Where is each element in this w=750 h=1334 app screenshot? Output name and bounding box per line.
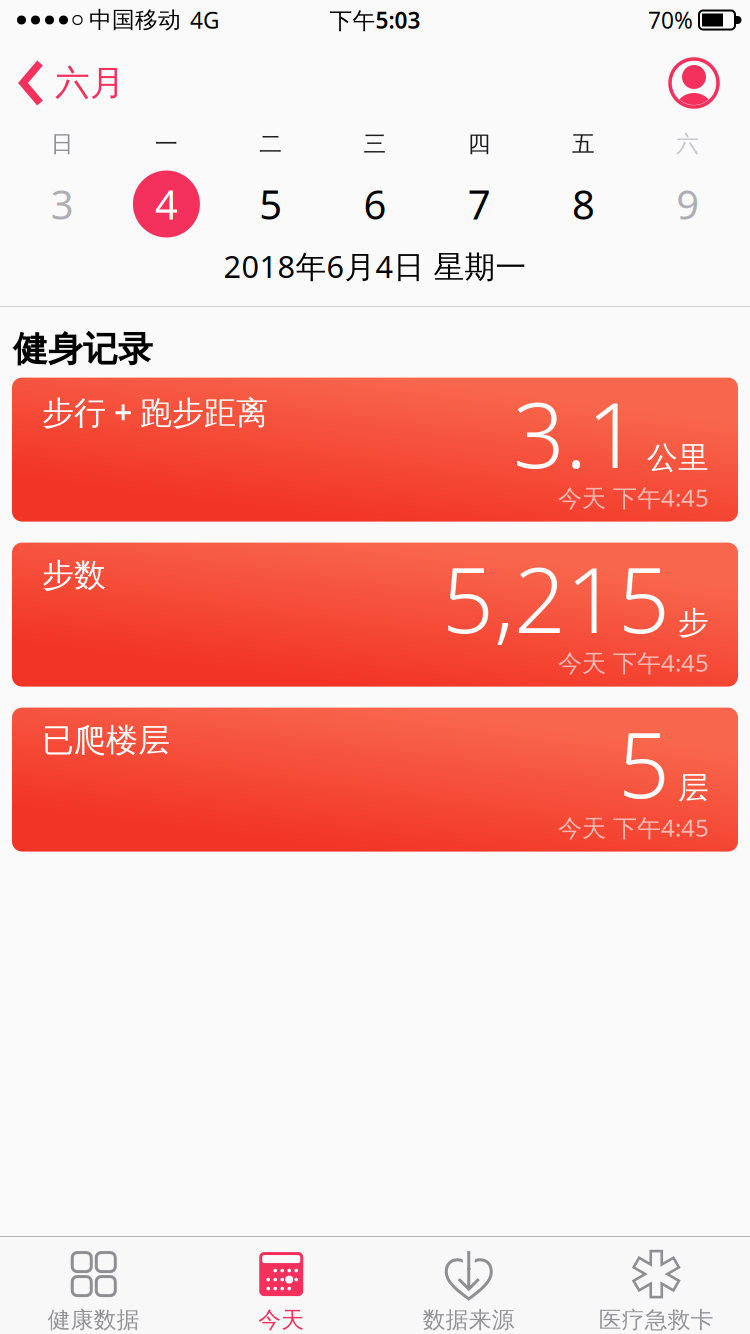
- staticText: 今天 下午4:45: [558, 482, 709, 513]
- button[interactable]: 数据来源: [375, 1237, 562, 1334]
- button[interactable]: 健康数据: [0, 1237, 187, 1334]
- staticText: 健康数据: [48, 1306, 140, 1334]
- staticText: 6: [363, 177, 386, 230]
- button[interactable]: 六月: [0, 59, 125, 107]
- staticText: 今天 下午4:45: [558, 812, 709, 843]
- staticText: 二: [259, 130, 282, 158]
- button[interactable]: [669, 58, 750, 108]
- staticText: 70%: [648, 5, 693, 35]
- staticText: 5: [259, 177, 282, 230]
- staticText: 层: [678, 769, 709, 807]
- staticText: 5,215: [442, 538, 670, 658]
- button[interactable]: 3: [10, 162, 114, 246]
- staticText: 医疗急救卡: [599, 1306, 714, 1334]
- button[interactable]: 7: [427, 162, 531, 246]
- staticText: 五: [572, 130, 595, 158]
- staticText: 六月: [55, 62, 125, 104]
- button[interactable]: 今天: [187, 1237, 375, 1334]
- staticText: 公里: [647, 439, 709, 477]
- button[interactable]: 步数: [12, 543, 738, 687]
- staticText: 2018年6月4日 星期一: [223, 246, 526, 286]
- button[interactable]: 步行 + 跑步距离: [12, 378, 738, 522]
- staticText: 四: [468, 130, 491, 158]
- staticText: 一: [155, 130, 178, 158]
- staticText: 3.1: [513, 373, 639, 493]
- staticText: 日: [51, 130, 74, 158]
- button[interactable]: 6: [323, 162, 427, 246]
- staticText: 步行 + 跑步距离: [42, 391, 268, 433]
- staticText: 8: [572, 177, 595, 230]
- staticText: 今天: [258, 1306, 304, 1334]
- staticText: 4: [155, 177, 178, 230]
- staticText: 步数: [42, 556, 106, 595]
- button[interactable]: 5: [219, 162, 323, 246]
- staticText: 4G: [190, 5, 220, 35]
- staticText: 数据来源: [423, 1306, 515, 1334]
- staticText: 今天 下午4:45: [558, 647, 709, 678]
- staticText: 7: [468, 177, 491, 230]
- staticText: 3: [51, 177, 74, 230]
- button[interactable]: 已爬楼层: [12, 708, 738, 852]
- staticText: 9: [676, 177, 699, 230]
- button[interactable]: 4: [114, 162, 219, 246]
- staticText: 中国移动: [89, 6, 181, 34]
- staticText: 六: [676, 130, 699, 158]
- staticText: 5: [618, 703, 670, 823]
- button[interactable]: 医疗急救卡: [562, 1237, 750, 1334]
- button[interactable]: 8: [531, 162, 636, 246]
- staticText: 步: [678, 604, 709, 642]
- button[interactable]: 9: [636, 162, 740, 246]
- staticText: 健身记录: [13, 328, 153, 371]
- staticText: 三: [363, 130, 386, 158]
- staticText: 下午5:03: [329, 5, 420, 35]
- staticText: 已爬楼层: [42, 721, 170, 760]
